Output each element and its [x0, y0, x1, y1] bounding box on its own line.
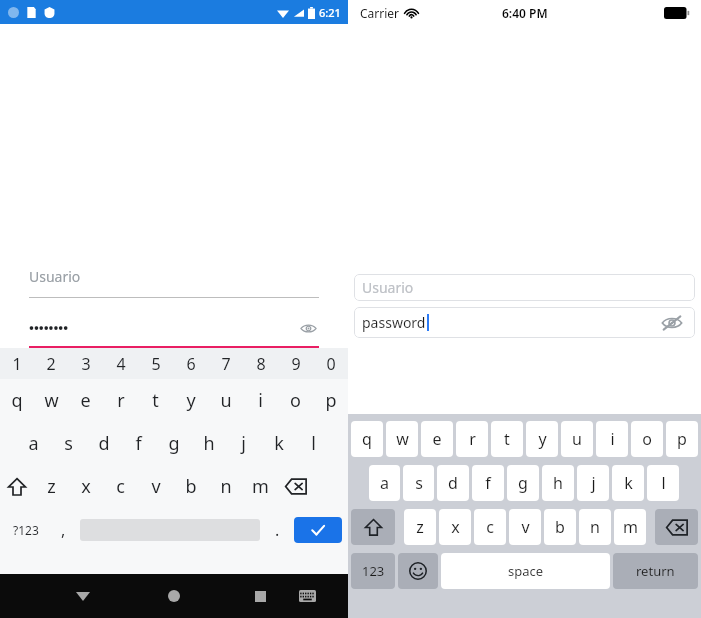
button[interactable]: v	[509, 509, 541, 545]
button[interactable]: 2	[34, 348, 68, 379]
button[interactable]: l	[647, 465, 679, 501]
button[interactable]: b	[173, 465, 208, 508]
button[interactable]: 4	[103, 348, 138, 379]
staticText: t	[504, 428, 510, 450]
button[interactable]: p	[666, 421, 698, 457]
button[interactable]: j	[226, 422, 261, 465]
button[interactable]: j	[577, 465, 609, 501]
button[interactable]: n	[579, 509, 611, 545]
button[interactable]: r	[456, 421, 488, 457]
button[interactable]: r	[103, 379, 138, 422]
button[interactable]: m	[243, 465, 278, 508]
button[interactable]: c	[103, 465, 138, 508]
button[interactable]: 9	[278, 348, 313, 379]
button[interactable]: f	[472, 465, 504, 501]
button[interactable]: Usuario	[29, 265, 319, 298]
button[interactable]: h	[191, 422, 226, 465]
button[interactable]: q	[351, 421, 383, 457]
staticText: v	[521, 516, 530, 538]
button[interactable]: a	[16, 422, 51, 465]
button[interactable]: c	[474, 509, 506, 545]
button[interactable]: g	[507, 465, 539, 501]
button[interactable]: Shift	[0, 465, 34, 508]
button[interactable]: e	[421, 421, 453, 457]
button[interactable]: 123	[351, 553, 395, 589]
button[interactable]: y	[173, 379, 208, 422]
button[interactable]: z	[404, 509, 436, 545]
staticText: v	[151, 474, 161, 499]
button[interactable]: Switch keyboard	[293, 582, 321, 610]
button[interactable]: k	[612, 465, 644, 501]
staticText: 1	[12, 353, 22, 375]
button[interactable]: .	[260, 508, 294, 551]
button[interactable]: Recent apps	[245, 581, 275, 611]
button[interactable]: return	[613, 553, 698, 589]
button[interactable]: t	[491, 421, 523, 457]
button[interactable]: a	[369, 465, 400, 501]
button[interactable]: f	[121, 422, 156, 465]
button[interactable]: 0	[313, 348, 348, 379]
button[interactable]: d	[86, 422, 121, 465]
staticText: o	[642, 428, 652, 450]
staticText: h	[203, 431, 215, 456]
button[interactable]: 1	[0, 348, 34, 379]
button[interactable]: space	[441, 553, 610, 589]
button[interactable]: y	[526, 421, 558, 457]
button[interactable]: i	[243, 379, 278, 422]
button[interactable]: s	[51, 422, 86, 465]
button[interactable]: q	[0, 379, 34, 422]
button[interactable]: n	[208, 465, 243, 508]
staticText: y	[538, 428, 547, 450]
button[interactable]: 6	[173, 348, 208, 379]
button[interactable]: o	[278, 379, 313, 422]
staticText: n	[220, 474, 232, 499]
button[interactable]: Back	[68, 581, 98, 611]
button[interactable]: w	[34, 379, 68, 422]
button[interactable]: b	[544, 509, 576, 545]
button[interactable]: v	[138, 465, 173, 508]
button[interactable]: l	[296, 422, 331, 465]
button[interactable]: Backspace	[278, 465, 313, 508]
button[interactable]: h	[542, 465, 574, 501]
button[interactable]: Show password	[297, 317, 319, 339]
button[interactable]: ••••••••	[29, 311, 319, 348]
staticText: Carrier	[360, 5, 400, 21]
button[interactable]: z	[34, 465, 68, 508]
button[interactable]: 8	[243, 348, 278, 379]
button[interactable]: Emoji	[398, 553, 438, 589]
staticText: 6	[186, 353, 196, 375]
button[interactable]: m	[614, 509, 646, 545]
button[interactable]: Usuario	[354, 274, 695, 301]
staticText: e	[80, 388, 91, 413]
staticText: y	[186, 388, 196, 413]
button[interactable]: ?123	[6, 508, 46, 551]
button[interactable]: x	[68, 465, 103, 508]
staticText: 7	[221, 353, 231, 375]
button[interactable]: o	[631, 421, 663, 457]
staticText: a	[28, 431, 39, 456]
button[interactable]: ,	[46, 508, 80, 551]
button[interactable]: x	[439, 509, 471, 545]
button[interactable]: k	[261, 422, 296, 465]
button[interactable]: Home	[159, 581, 189, 611]
button[interactable]: 3	[68, 348, 103, 379]
button[interactable]: p	[313, 379, 348, 422]
staticText: 4	[116, 353, 126, 375]
button[interactable]: Hide password	[659, 310, 685, 336]
button[interactable]: u	[561, 421, 593, 457]
button[interactable]: w	[386, 421, 418, 457]
button[interactable]: 7	[208, 348, 243, 379]
button[interactable]: Shift	[351, 509, 395, 545]
button[interactable]: s	[403, 465, 434, 501]
button[interactable]: g	[156, 422, 191, 465]
button[interactable]: u	[208, 379, 243, 422]
button[interactable]: t	[138, 379, 173, 422]
button[interactable]: Enter	[294, 517, 342, 543]
button[interactable]: e	[68, 379, 103, 422]
button[interactable]: i	[596, 421, 628, 457]
button[interactable]: password	[354, 307, 695, 338]
button[interactable]: Backspace	[655, 509, 698, 545]
button[interactable]: 5	[138, 348, 173, 379]
button[interactable]: d	[437, 465, 469, 501]
